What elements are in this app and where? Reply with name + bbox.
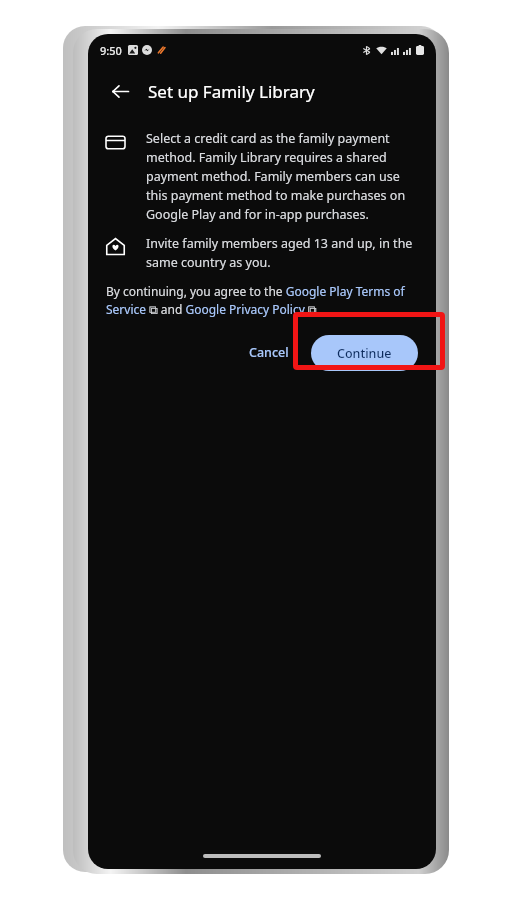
staticText: 9:50: [100, 43, 122, 58]
staticText: By continuing, you agree to the Google P…: [106, 283, 414, 318]
staticText: Cancel: [249, 344, 289, 361]
staticText: Continue: [337, 345, 392, 362]
staticText: Invite family members aged 13 and up, in…: [146, 235, 414, 271]
button[interactable]: Cancel: [233, 334, 305, 371]
staticText: Set up Family Library: [148, 80, 315, 103]
button[interactable]: Back: [102, 73, 138, 109]
button[interactable]: Continue: [311, 335, 418, 371]
staticText: Select a credit card as the family payme…: [146, 130, 414, 223]
